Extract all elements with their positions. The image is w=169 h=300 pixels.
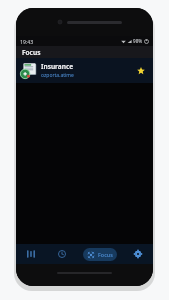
staticText: 98% <box>133 38 143 44</box>
staticText: Focus <box>98 251 113 258</box>
button[interactable]: Focus <box>16 46 153 58</box>
staticText: Focus <box>22 48 41 57</box>
button[interactable]: Settings <box>127 247 149 261</box>
staticText: ozporta.atime <box>41 72 74 79</box>
button[interactable]: Apps list <box>20 247 42 261</box>
button[interactable]: Favourite <box>133 63 149 79</box>
button[interactable]: Focus <box>83 248 117 261</box>
staticText: 19:43 <box>20 38 34 45</box>
staticText: Insurance <box>41 62 74 71</box>
button[interactable]: Timer <box>51 247 73 261</box>
button[interactable]: Insurance <box>16 58 153 83</box>
